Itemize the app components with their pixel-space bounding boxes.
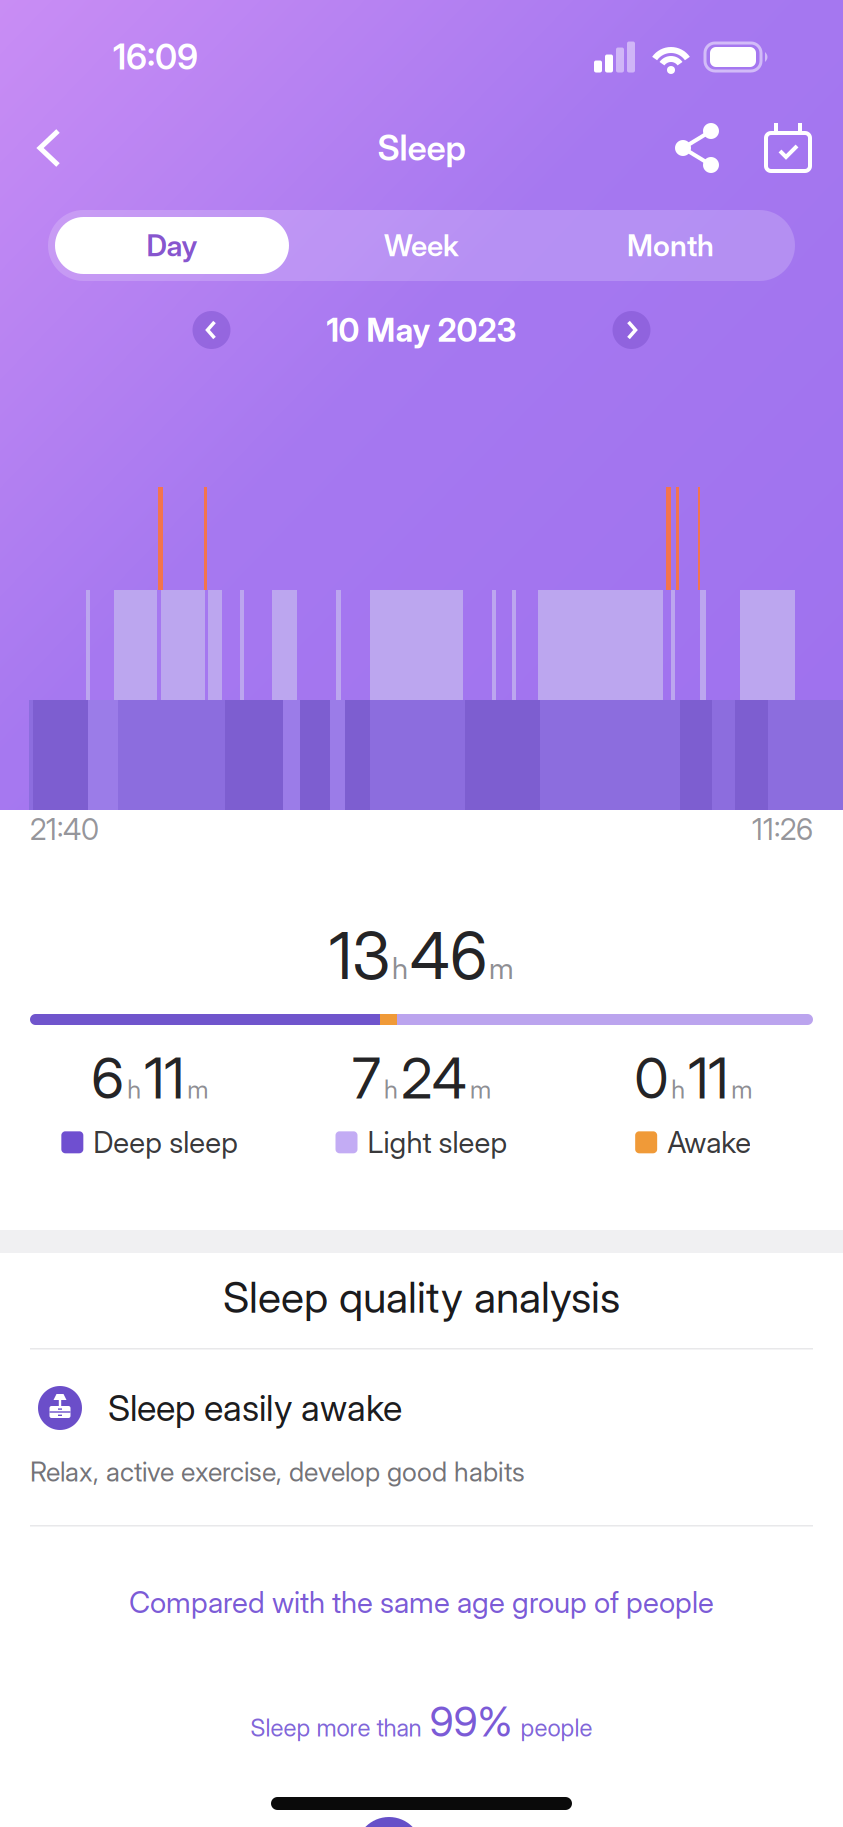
staticText: Deep sleep bbox=[93, 1125, 238, 1160]
staticText: Relax, active exercise, develop good hab… bbox=[30, 1456, 525, 1487]
staticText: 6 bbox=[91, 1045, 124, 1111]
button[interactable]: Day bbox=[48, 217, 289, 274]
staticText: Week bbox=[384, 228, 459, 263]
staticText: 46 bbox=[410, 918, 487, 993]
staticText: 21:40 bbox=[30, 812, 99, 847]
staticText: Awake bbox=[667, 1125, 751, 1160]
button[interactable]: Back bbox=[0, 127, 64, 169]
staticText: 0 bbox=[634, 1045, 668, 1111]
staticText: h bbox=[384, 1074, 398, 1104]
staticText: 99% bbox=[429, 1697, 512, 1746]
staticText: Day bbox=[146, 228, 197, 263]
staticText: Sleep quality analysis bbox=[223, 1272, 620, 1322]
button[interactable]: Next day bbox=[612, 311, 650, 349]
staticText: Compared with the same age group of peop… bbox=[129, 1585, 714, 1620]
staticText: m bbox=[731, 1074, 752, 1104]
button[interactable]: Sleep easily awake bbox=[0, 1386, 843, 1430]
button[interactable]: Previous day bbox=[192, 311, 230, 349]
staticText: m bbox=[489, 951, 514, 986]
staticText: m bbox=[187, 1074, 208, 1104]
staticText: Light sleep bbox=[367, 1125, 507, 1160]
staticText: 7 bbox=[352, 1045, 381, 1111]
button[interactable]: Month bbox=[546, 210, 795, 281]
staticText: Month bbox=[627, 228, 714, 263]
staticText: 16:09 bbox=[113, 37, 198, 77]
staticText: 24 bbox=[401, 1045, 467, 1111]
staticText: 11 bbox=[688, 1045, 728, 1111]
button[interactable]: Compared with the same age group of peop… bbox=[0, 1585, 843, 1620]
staticText: h bbox=[671, 1074, 685, 1104]
button[interactable]: Week bbox=[297, 210, 546, 281]
staticText: 10 May 2023 bbox=[326, 311, 516, 349]
staticText: Sleep more than bbox=[250, 1713, 421, 1742]
button[interactable]: Share bbox=[671, 122, 723, 174]
staticText: Sleep easily awake bbox=[108, 1387, 402, 1429]
staticText: people bbox=[520, 1713, 592, 1742]
staticText: 11:26 bbox=[752, 812, 813, 847]
staticText: 13 bbox=[329, 918, 390, 993]
staticText: 11 bbox=[144, 1045, 184, 1111]
staticText: m bbox=[470, 1074, 491, 1104]
button[interactable]: Calendar bbox=[723, 121, 813, 175]
staticText: h bbox=[392, 951, 408, 986]
staticText: h bbox=[127, 1074, 141, 1104]
staticText: Sleep bbox=[377, 128, 465, 168]
